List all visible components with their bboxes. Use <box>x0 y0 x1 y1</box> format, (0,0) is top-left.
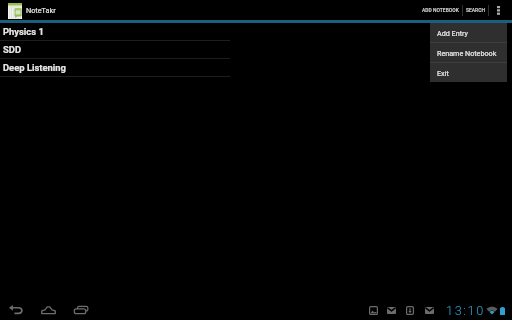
staticText: Deep Listening <box>3 62 66 73</box>
staticText: SEARCH <box>466 7 485 13</box>
button[interactable]: Recent apps <box>71 300 91 320</box>
staticText: 13:10 <box>446 303 485 318</box>
button[interactable]: More options <box>489 0 508 20</box>
staticText: Rename Notebook <box>437 49 497 57</box>
button[interactable]: SEARCH <box>463 0 488 20</box>
button[interactable]: ADD NOTEBOOK <box>419 0 462 20</box>
staticText: Physics 1 <box>3 26 44 37</box>
staticText: NoteTakr <box>26 6 56 15</box>
button[interactable]: Deep Listening <box>0 59 230 77</box>
staticText: Add Entry <box>437 29 468 37</box>
button[interactable]: SDD <box>0 41 230 59</box>
button[interactable]: Exit <box>430 63 507 82</box>
staticText: SDD <box>3 44 21 55</box>
staticText: Exit <box>437 69 449 77</box>
button[interactable]: Rename Notebook <box>430 43 507 63</box>
button[interactable]: Physics 1 <box>0 23 230 41</box>
staticText: ADD NOTEBOOK <box>422 7 459 13</box>
button[interactable]: Home <box>38 300 58 320</box>
button[interactable]: Back <box>5 300 25 320</box>
button[interactable]: Add Entry <box>430 23 507 43</box>
